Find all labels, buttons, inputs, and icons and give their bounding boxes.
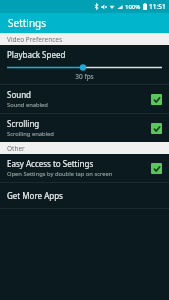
button[interactable]: Playback Speed — [0, 45, 169, 84]
staticText: Sound enabled — [7, 101, 48, 109]
staticText: Other — [7, 144, 25, 153]
staticText: Open Settings by double tap on screen — [7, 170, 113, 178]
staticText: 100% — [125, 3, 141, 11]
staticText: Scrolling — [7, 118, 40, 129]
button[interactable]: Get More Apps — [0, 183, 169, 208]
staticText: Scrolling enabled — [7, 130, 54, 138]
staticText: Video Preferences — [7, 35, 63, 44]
button[interactable]: Enabled checkbox — [151, 94, 162, 105]
staticText: Sound — [7, 89, 32, 100]
staticText: Settings — [8, 16, 47, 30]
button[interactable]: Enabled checkbox — [151, 123, 162, 134]
button[interactable]: Easy Access to Settings — [0, 154, 169, 182]
staticText: 30 fps — [7, 72, 162, 81]
button[interactable]: Scrolling — [0, 114, 169, 142]
button[interactable]: Sound — [0, 85, 169, 113]
staticText: Playback Speed — [7, 49, 66, 60]
staticText: 11:51 — [149, 2, 166, 11]
staticText: Get More Apps — [7, 190, 63, 201]
button[interactable]: Enabled checkbox — [151, 163, 162, 174]
staticText: Easy Access to Settings — [7, 158, 94, 169]
